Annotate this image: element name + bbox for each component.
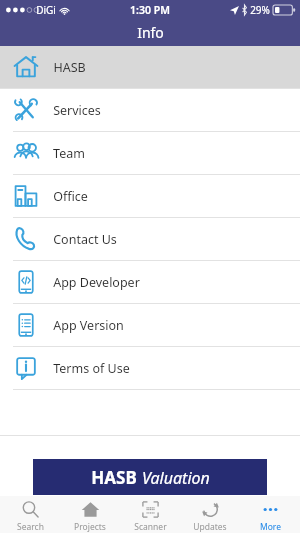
staticText: Contact Us xyxy=(53,231,117,248)
staticText: DiGi xyxy=(36,3,56,17)
staticText: HASB xyxy=(91,466,137,489)
staticText: Search xyxy=(17,521,44,533)
button[interactable]: More xyxy=(240,496,300,533)
staticText: 29% xyxy=(250,3,270,17)
staticText: HASB xyxy=(53,59,86,76)
staticText: App Version xyxy=(53,317,124,334)
staticText: More xyxy=(260,521,281,533)
staticText: Team xyxy=(53,145,85,162)
button[interactable]: Contact Us xyxy=(0,218,300,260)
button[interactable]: Terms of Use xyxy=(0,347,300,389)
button[interactable]: App Version xyxy=(0,304,300,346)
staticText: Projects xyxy=(74,521,106,533)
button[interactable]: Scanner xyxy=(120,496,180,533)
button[interactable]: Office xyxy=(0,175,300,217)
button[interactable]: Search xyxy=(0,496,60,533)
staticText: 1:30 PM xyxy=(130,3,170,17)
staticText: Info xyxy=(137,23,164,42)
button[interactable]: HASB xyxy=(33,459,267,495)
staticText: Terms of Use xyxy=(53,360,130,377)
button[interactable]: App Developer xyxy=(0,261,300,303)
staticText: Updates xyxy=(193,521,227,533)
staticText: Office xyxy=(53,188,88,205)
button[interactable]: Team xyxy=(0,132,300,174)
button[interactable]: HASB xyxy=(0,46,300,88)
staticText: Scanner xyxy=(134,521,167,533)
staticText: Services xyxy=(53,102,101,119)
button[interactable]: Updates xyxy=(180,496,240,533)
staticText: App Developer xyxy=(53,274,140,291)
staticText: Valuation xyxy=(142,467,210,489)
button[interactable]: Projects xyxy=(60,496,120,533)
button[interactable]: Services xyxy=(0,89,300,131)
